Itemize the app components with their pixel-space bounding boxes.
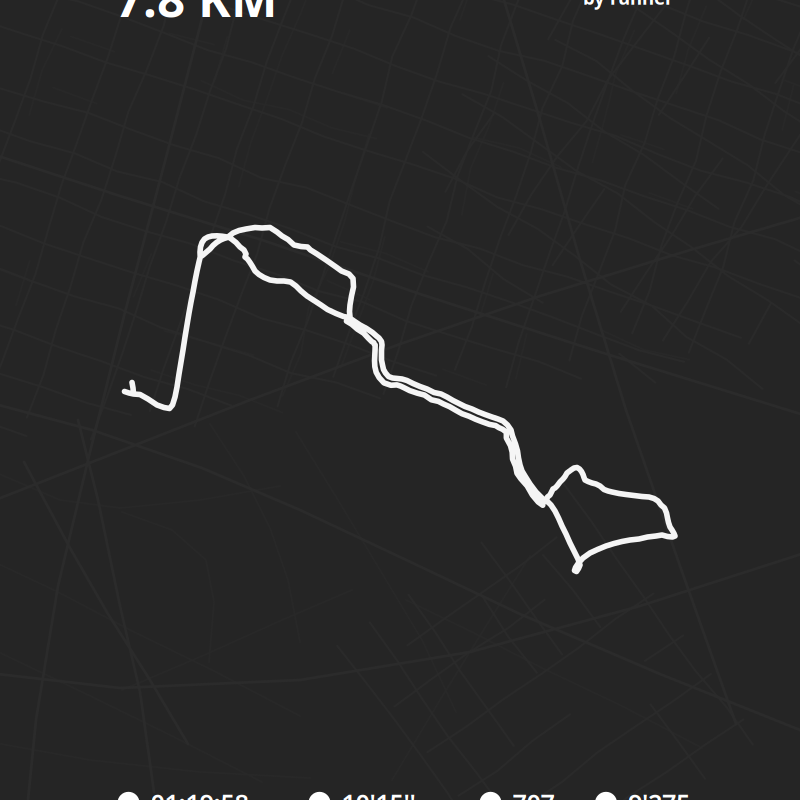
staticText: 01:19:58	[150, 786, 248, 800]
staticText: 9'275	[628, 786, 690, 800]
staticText: 707	[512, 786, 554, 800]
staticText: 7.8 KM	[115, 0, 278, 30]
staticText: 10'15''	[341, 786, 415, 800]
staticText: by runner	[583, 0, 673, 10]
